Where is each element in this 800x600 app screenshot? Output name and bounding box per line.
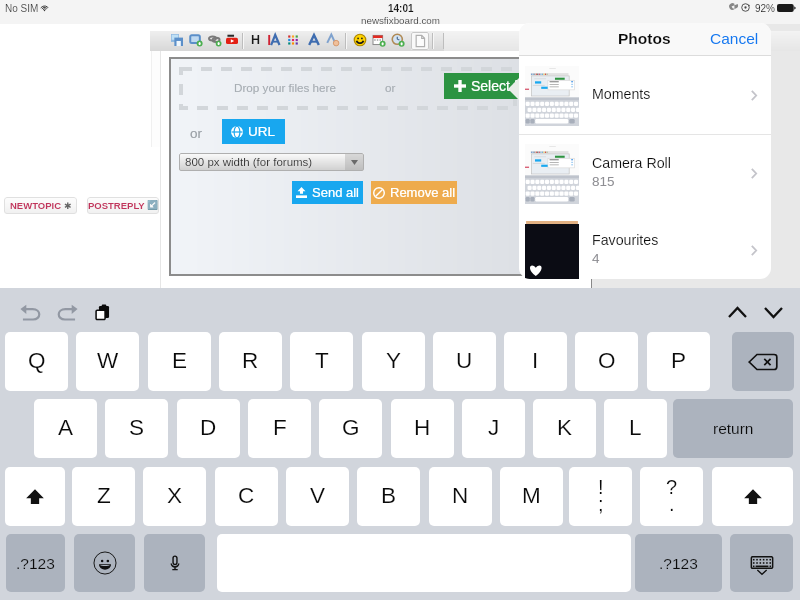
button[interactable]: .?123	[635, 534, 722, 592]
button[interactable]: return	[673, 399, 793, 458]
button[interactable]: T	[290, 332, 353, 391]
button[interactable]: K	[533, 399, 596, 458]
staticText: W	[97, 348, 119, 373]
button[interactable]: Editor tool	[285, 32, 301, 48]
staticText: Select files	[471, 78, 539, 94]
staticText: 92%	[755, 3, 776, 14]
staticText: No SIM	[5, 3, 39, 14]
button[interactable]: Send all	[292, 181, 363, 204]
button[interactable]: Editor tool	[306, 32, 322, 48]
button[interactable]: L	[604, 399, 667, 458]
button[interactable]: !	[569, 467, 632, 526]
button[interactable]: Hide keyboard	[730, 534, 793, 592]
button[interactable]: Moments	[519, 57, 771, 134]
button[interactable]: Dictation	[144, 534, 205, 592]
staticText: 815	[592, 174, 615, 189]
staticText: Moments	[592, 86, 651, 102]
button[interactable]: Backspace	[732, 332, 794, 391]
staticText: V	[310, 483, 326, 508]
button[interactable]: E	[148, 332, 211, 391]
button[interactable]: Next field	[760, 299, 786, 325]
staticText: N	[452, 483, 469, 508]
button[interactable]: W	[76, 332, 139, 391]
button[interactable]: Paste	[91, 299, 117, 325]
staticText: !	[598, 476, 604, 498]
button[interactable]: C	[215, 467, 278, 526]
staticText: Send all	[312, 185, 359, 200]
button[interactable]: O	[575, 332, 638, 391]
staticText: 800 px width (for forums)	[185, 156, 313, 169]
button[interactable]: N	[429, 467, 492, 526]
button[interactable]: Q	[5, 332, 68, 391]
button[interactable]: Shift	[712, 467, 793, 526]
button[interactable]: POSTREPLY	[87, 197, 159, 214]
button[interactable]: NEWTOPIC	[4, 197, 77, 214]
button[interactable]: U	[433, 332, 496, 391]
staticText: K	[557, 415, 573, 440]
button[interactable]: Editor tool	[169, 32, 185, 48]
button[interactable]: Editor tool	[371, 32, 387, 48]
button[interactable]: Shift	[5, 467, 65, 526]
button[interactable]: Remove all	[371, 181, 457, 204]
staticText: P	[671, 348, 687, 373]
button[interactable]: URL	[222, 119, 285, 144]
staticText: J	[488, 415, 500, 440]
button[interactable]: S	[105, 399, 168, 458]
staticText: T	[315, 348, 329, 373]
button[interactable]: Editor tool	[352, 32, 368, 48]
button[interactable]: D	[177, 399, 240, 458]
staticText: B	[381, 483, 397, 508]
staticText: POSTREPLY	[88, 200, 145, 211]
staticText: H	[251, 33, 261, 47]
button[interactable]: Editor tool	[207, 32, 223, 48]
button[interactable]: P	[647, 332, 710, 391]
button[interactable]: M	[500, 467, 563, 526]
button[interactable]: Cancel	[683, 31, 771, 48]
button[interactable]: Camera Roll	[519, 135, 771, 212]
button[interactable]: J	[462, 399, 525, 458]
staticText: Camera Roll	[592, 155, 671, 171]
button[interactable]: Previous field	[724, 299, 750, 325]
button[interactable]: Editor tool	[224, 32, 240, 48]
button[interactable]: Y	[362, 332, 425, 391]
button[interactable]: Editor tool	[266, 32, 282, 48]
button[interactable]: G	[319, 399, 382, 458]
staticText: ?	[666, 476, 678, 498]
button[interactable]: Redo	[54, 299, 80, 325]
staticText: A	[58, 415, 74, 440]
button[interactable]: Editor tool	[188, 32, 204, 48]
button[interactable]: H	[248, 32, 264, 48]
button[interactable]: H	[391, 399, 454, 458]
staticText: R	[242, 348, 259, 373]
staticText: Q	[28, 348, 46, 373]
button[interactable]: Favourites	[519, 212, 771, 279]
staticText: ;	[598, 493, 604, 515]
staticText: return	[713, 420, 754, 437]
button[interactable]: Undo	[17, 299, 43, 325]
button[interactable]: I	[504, 332, 567, 391]
staticText: .	[669, 493, 675, 515]
button[interactable]: B	[357, 467, 420, 526]
staticText: I	[532, 348, 539, 373]
staticText: Drop your files here	[234, 81, 336, 94]
button[interactable]: Page	[411, 32, 429, 50]
button[interactable]: ?	[640, 467, 703, 526]
button[interactable]: Editor tool	[325, 32, 341, 48]
staticText: L	[629, 415, 642, 440]
button[interactable]: .?123	[6, 534, 65, 592]
staticText: M	[522, 483, 541, 508]
button[interactable]: V	[286, 467, 349, 526]
button[interactable]: F	[248, 399, 311, 458]
staticText: O	[598, 348, 616, 373]
button[interactable]: Editor tool	[390, 32, 406, 48]
button[interactable]: Emoji	[74, 534, 135, 592]
button[interactable]: R	[219, 332, 282, 391]
button[interactable]: Select files	[444, 73, 540, 99]
button[interactable]: Z	[72, 467, 135, 526]
button[interactable]: X	[143, 467, 206, 526]
button[interactable]: A	[34, 399, 97, 458]
staticText: C	[238, 483, 255, 508]
staticText: Y	[386, 348, 402, 373]
button[interactable]: 800 px width (for forums)	[179, 153, 364, 171]
